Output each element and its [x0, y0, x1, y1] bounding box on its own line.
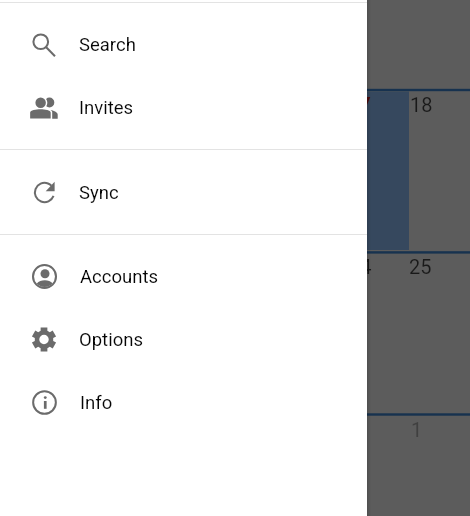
button[interactable]: Close navigation drawer — [0, 0, 470, 516]
button[interactable]: Invites — [0, 76, 367, 139]
staticText: 1 — [411, 418, 423, 441]
staticText: 24 — [349, 255, 372, 278]
staticText: Info — [80, 392, 113, 414]
button[interactable]: Accounts — [0, 245, 367, 308]
staticText: 18 — [410, 93, 433, 116]
staticText: Invites — [79, 97, 134, 119]
staticText: Options — [79, 329, 143, 351]
staticText: 25 — [409, 255, 432, 278]
staticText: Accounts — [80, 266, 159, 288]
staticText: Search — [79, 34, 136, 56]
button[interactable]: Sync — [0, 161, 367, 224]
staticText: Sync — [79, 182, 119, 204]
button[interactable]: Info — [0, 371, 367, 434]
button[interactable]: Options — [0, 308, 367, 371]
button[interactable]: Search — [0, 13, 367, 76]
